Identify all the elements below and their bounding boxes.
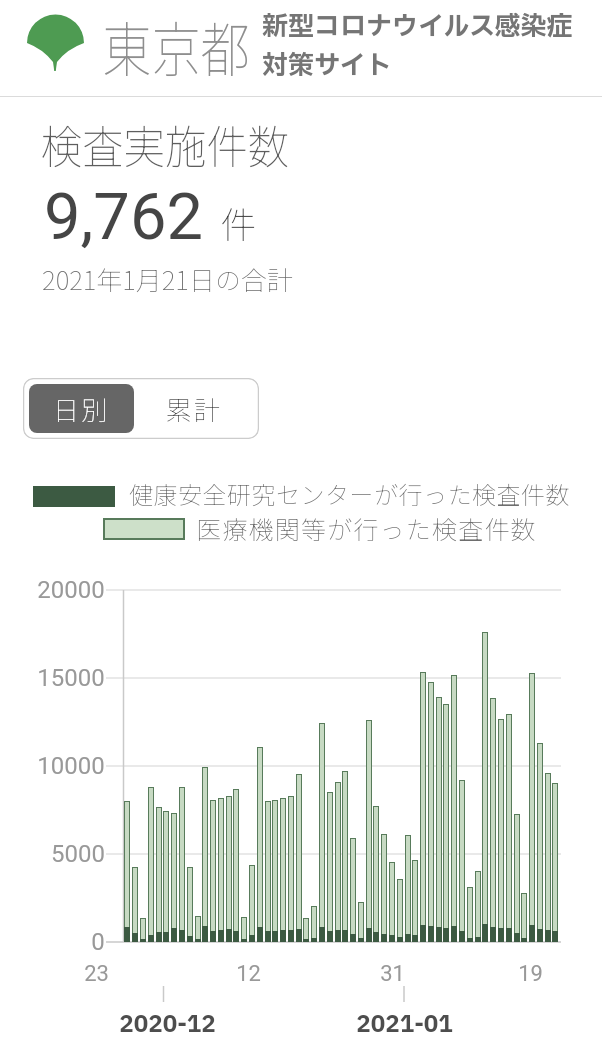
staticText: 医療機関等が行った検査件数 bbox=[196, 510, 537, 546]
button[interactable]: 日別 bbox=[29, 384, 134, 433]
staticText: 累計 bbox=[166, 390, 223, 428]
staticText: 10000 bbox=[37, 752, 105, 780]
staticText: 31 bbox=[380, 961, 405, 987]
staticText: 新型コロナウイルス感染症 対策サイト bbox=[262, 7, 573, 86]
staticText: 検査実施件数 bbox=[41, 111, 289, 178]
staticText: 5000 bbox=[51, 840, 105, 868]
staticText: 東京都 bbox=[102, 2, 250, 89]
staticText: 健康安全研究センターが行った検査件数 bbox=[129, 476, 570, 511]
staticText: 2021年1月21日の合計 bbox=[42, 260, 293, 298]
staticText: 15000 bbox=[37, 664, 105, 692]
button[interactable] bbox=[24, 10, 252, 82]
staticText: 0 bbox=[91, 928, 105, 956]
button[interactable]: 累計 bbox=[135, 384, 253, 433]
staticText: 2020-12 bbox=[119, 1008, 216, 1042]
staticText: 2021-01 bbox=[356, 1008, 453, 1042]
staticText: 件 bbox=[220, 196, 257, 248]
staticText: 日別 bbox=[53, 390, 110, 428]
staticText: 12 bbox=[236, 961, 261, 987]
staticText: 20000 bbox=[37, 576, 105, 604]
staticText: 23 bbox=[84, 961, 109, 987]
staticText: 19 bbox=[518, 961, 543, 987]
staticText: 9,762 bbox=[44, 179, 203, 255]
